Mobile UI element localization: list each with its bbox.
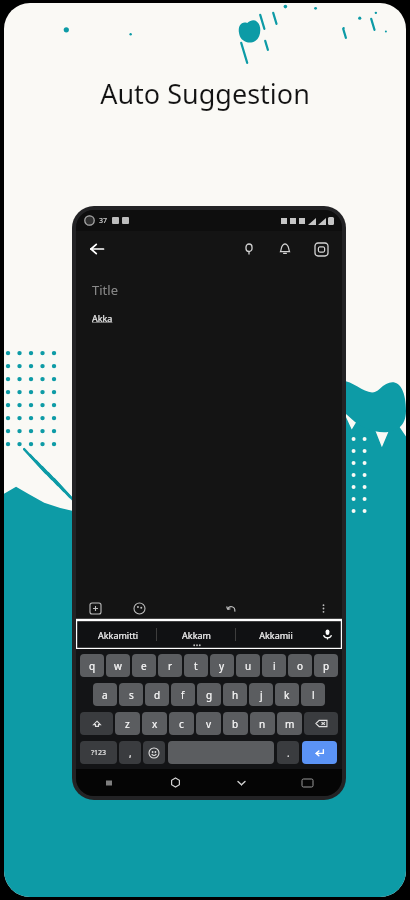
staticText: w <box>114 659 122 673</box>
staticText: c <box>179 717 184 731</box>
button[interactable]: y <box>210 654 234 677</box>
button[interactable]: Emoji <box>143 741 165 764</box>
button[interactable]: r <box>158 654 182 677</box>
staticText: Akkamitti <box>98 629 138 641</box>
button[interactable]: o <box>288 654 312 677</box>
staticText: . <box>287 746 290 760</box>
button[interactable]: Period <box>277 741 299 764</box>
button[interactable]: l <box>301 683 325 706</box>
staticText: h <box>232 688 239 702</box>
button[interactable]: Home <box>142 769 208 796</box>
staticText: r <box>168 659 173 673</box>
button[interactable]: Akkamii <box>236 620 315 649</box>
button[interactable]: s <box>119 683 143 706</box>
staticText: Akka <box>92 312 113 324</box>
staticText: y <box>219 659 225 673</box>
button[interactable]: Shift <box>80 712 113 735</box>
staticText: z <box>125 717 130 731</box>
staticText: v <box>206 717 212 731</box>
button[interactable]: a <box>93 683 117 706</box>
button[interactable]: z <box>115 712 140 735</box>
button[interactable]: Back <box>84 236 110 262</box>
button[interactable]: x <box>142 712 167 735</box>
staticText: p <box>323 659 330 673</box>
button[interactable]: w <box>106 654 130 677</box>
button[interactable]: Voice input <box>315 620 339 649</box>
staticText: b <box>232 717 239 731</box>
button[interactable]: Archive <box>308 236 334 262</box>
staticText: e <box>141 659 147 673</box>
button[interactable]: d <box>145 683 169 706</box>
button[interactable]: h <box>223 683 247 706</box>
staticText: s <box>129 688 134 702</box>
staticText: m <box>285 717 295 731</box>
button[interactable]: Color palette <box>130 599 148 617</box>
button[interactable]: v <box>196 712 221 735</box>
button[interactable]: Enter <box>302 741 337 764</box>
button[interactable]: Switch keyboard <box>274 769 340 796</box>
button[interactable]: Space <box>168 741 274 764</box>
staticText: l <box>312 688 315 702</box>
staticText: Title <box>92 281 118 299</box>
button[interactable]: Recents <box>76 769 142 796</box>
staticText: i <box>273 659 276 673</box>
staticText: n <box>259 717 266 731</box>
staticText: k <box>284 688 290 702</box>
staticText: Akkam <box>182 629 211 641</box>
button[interactable]: Reminder <box>272 236 298 262</box>
staticText: t <box>194 659 198 673</box>
button[interactable]: n <box>250 712 275 735</box>
button[interactable]: c <box>169 712 194 735</box>
staticText: j <box>260 688 263 702</box>
staticText: , <box>129 746 132 760</box>
button[interactable]: t <box>184 654 208 677</box>
button[interactable]: Symbols <box>80 741 117 764</box>
button[interactable]: g <box>197 683 221 706</box>
staticText: ?123 <box>91 748 107 758</box>
staticText: q <box>89 659 96 673</box>
button[interactable]: f <box>171 683 195 706</box>
staticText: a <box>102 688 108 702</box>
button[interactable]: Backspace <box>304 712 338 735</box>
staticText: d <box>154 688 161 702</box>
button[interactable]: Add image <box>86 599 104 617</box>
button[interactable]: Hide keyboard <box>208 769 274 796</box>
button[interactable]: q <box>80 654 104 677</box>
staticText: 37 <box>99 216 108 226</box>
button[interactable]: i <box>262 654 286 677</box>
staticText: u <box>245 659 252 673</box>
staticText: Auto Suggestion <box>100 75 310 112</box>
button[interactable]: b <box>223 712 248 735</box>
button[interactable]: e <box>132 654 156 677</box>
button[interactable]: Akkam <box>157 620 236 649</box>
button[interactable]: Comma <box>119 741 141 764</box>
button[interactable]: More options <box>314 599 332 617</box>
staticText: x <box>152 717 158 731</box>
button[interactable]: Akkamitti <box>79 620 157 649</box>
staticText: o <box>297 659 304 673</box>
staticText: f <box>181 688 185 702</box>
button[interactable]: k <box>275 683 299 706</box>
button[interactable]: p <box>314 654 338 677</box>
button[interactable]: j <box>249 683 273 706</box>
button[interactable]: m <box>277 712 302 735</box>
staticText: Akkamii <box>259 629 293 641</box>
button[interactable]: Undo <box>222 599 240 617</box>
button[interactable]: Pin <box>236 236 262 262</box>
button[interactable]: u <box>236 654 260 677</box>
staticText: g <box>206 688 213 702</box>
